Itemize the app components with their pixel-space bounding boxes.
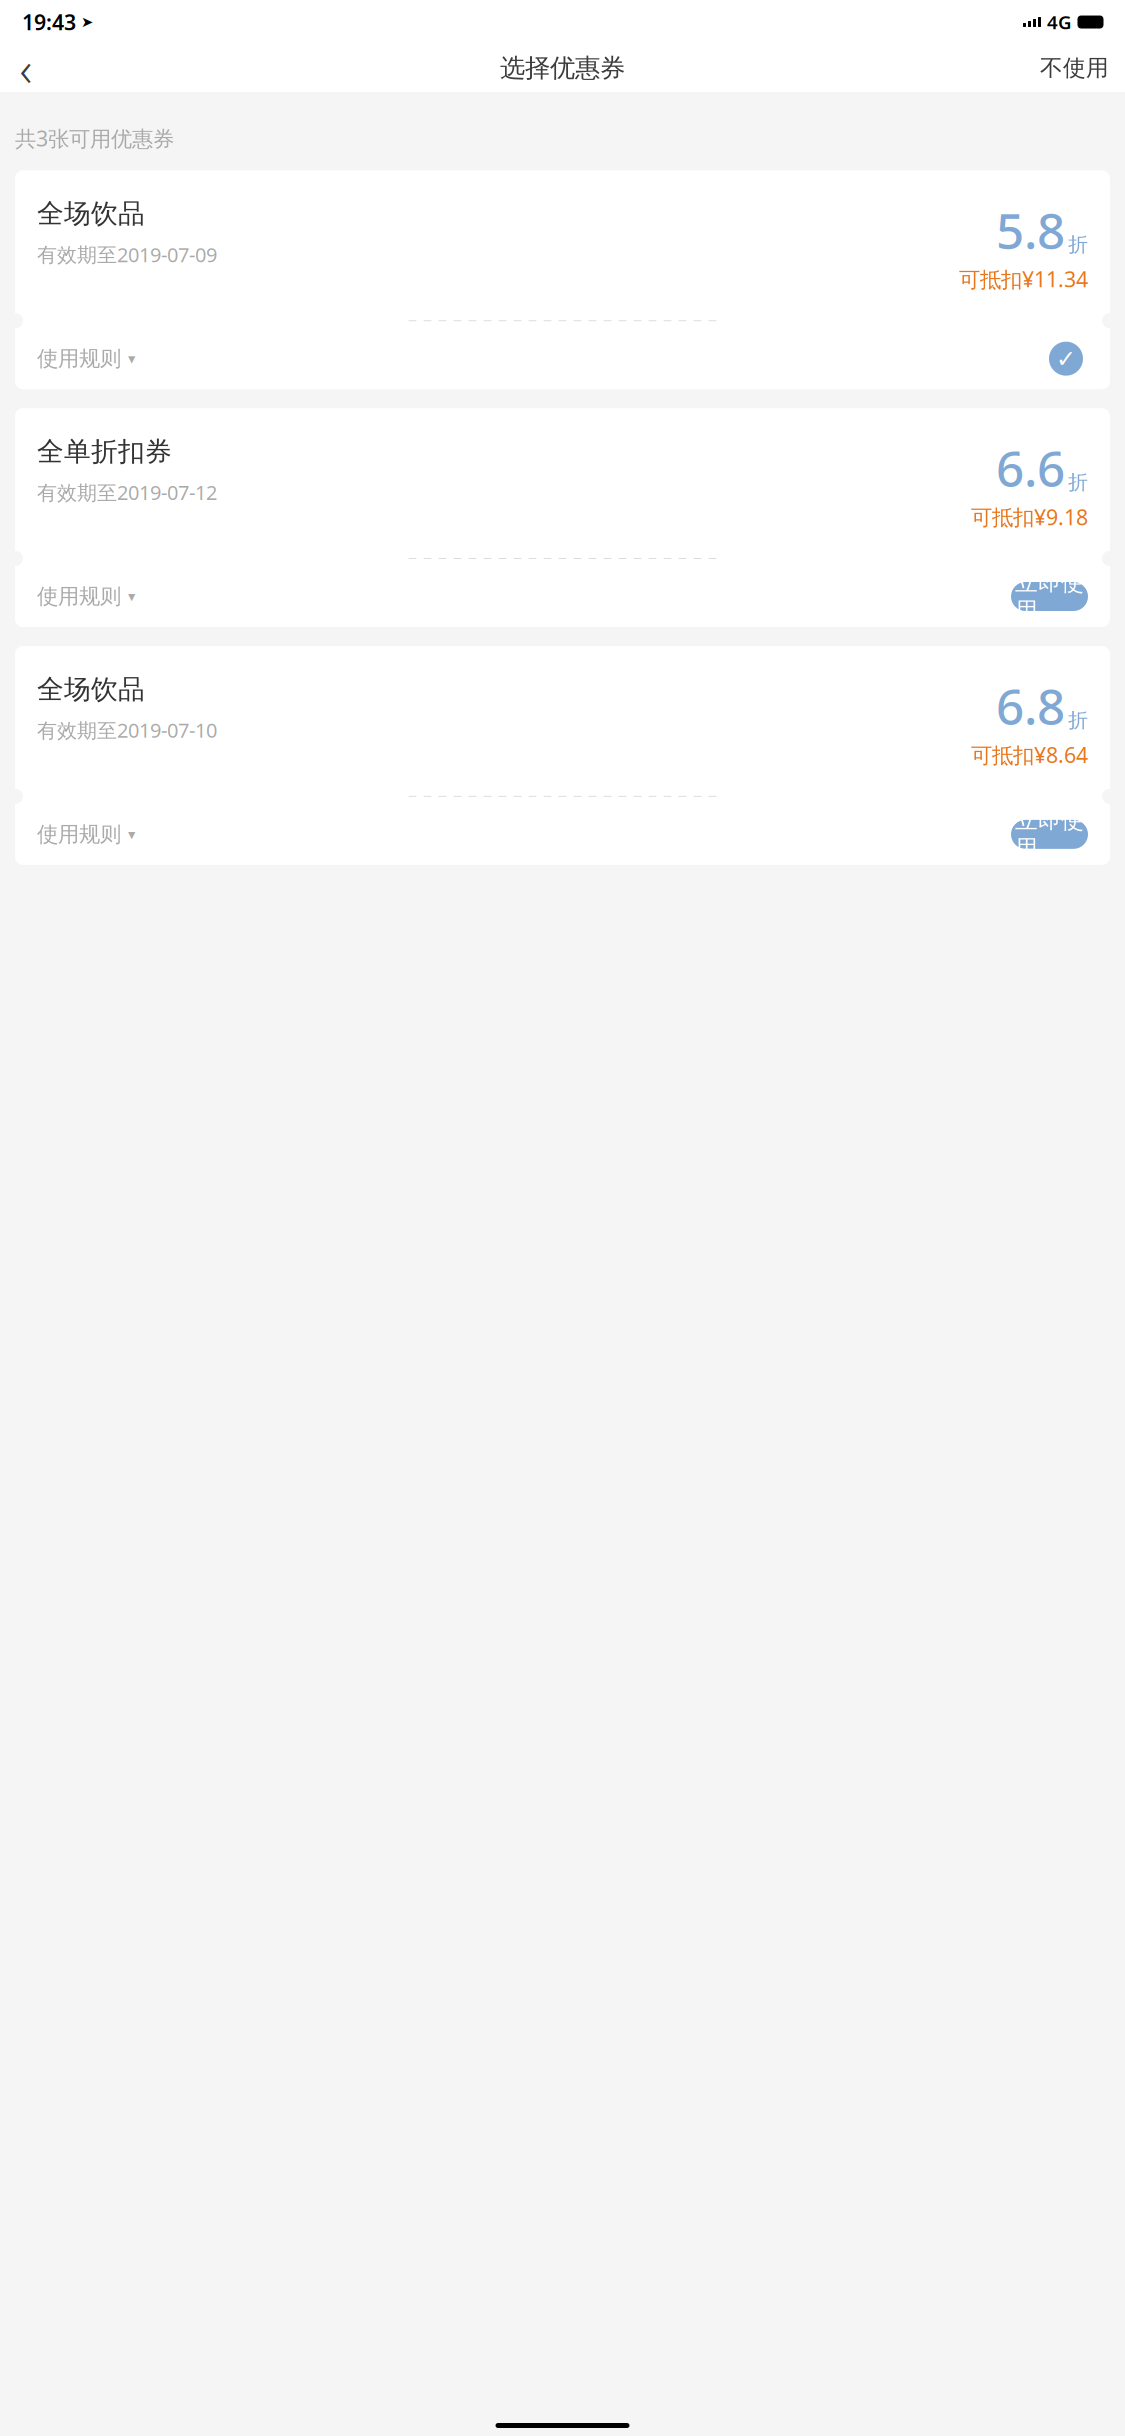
button[interactable]: 使用规则 <box>37 811 145 857</box>
staticText: 不使用 <box>1040 54 1109 82</box>
button[interactable]: Coupon selected <box>1044 337 1088 381</box>
button[interactable]: 立即使用 <box>1011 820 1088 849</box>
staticText: 6.6 <box>996 435 1065 501</box>
staticText: 折 <box>1068 708 1088 733</box>
staticText: 使用规则 <box>37 583 121 610</box>
button[interactable]: 使用规则 <box>37 336 145 382</box>
staticText: 选择优惠券 <box>500 52 625 83</box>
staticText: 立即使用 <box>1015 569 1084 624</box>
staticText: ➤ <box>81 14 93 30</box>
staticText: 4G <box>1047 10 1072 34</box>
staticText: 全场饮品 <box>37 673 145 706</box>
staticText: 有效期至2019-07-12 <box>37 479 217 505</box>
button[interactable]: Back <box>0 44 52 92</box>
staticText: 可抵扣¥8.64 <box>971 740 1088 769</box>
staticText: ▾ <box>128 350 135 367</box>
staticText: 使用规则 <box>37 346 121 372</box>
button[interactable]: 不使用 <box>1024 44 1125 92</box>
staticText: 19:43 <box>22 8 76 36</box>
staticText: 有效期至2019-07-09 <box>37 241 217 268</box>
staticText: 可抵扣¥11.34 <box>959 265 1088 293</box>
staticText: ▾ <box>128 588 135 605</box>
staticText: 立即使用 <box>1015 806 1084 862</box>
staticText: 全单折扣券 <box>37 435 172 468</box>
staticText: 折 <box>1068 470 1088 495</box>
staticText: 5.8 <box>996 197 1065 263</box>
staticText: ✓ <box>1056 345 1076 372</box>
button[interactable]: 使用规则 <box>37 573 145 620</box>
staticText: 全场饮品 <box>37 197 145 230</box>
staticText: ‹ <box>19 36 32 100</box>
staticText: 可抵扣¥9.18 <box>971 503 1088 531</box>
staticText: 共3张可用优惠券 <box>15 124 174 152</box>
staticText: 折 <box>1068 232 1088 257</box>
staticText: 有效期至2019-07-10 <box>37 717 217 743</box>
staticText: ▾ <box>128 826 135 843</box>
staticText: 6.8 <box>996 673 1065 738</box>
button[interactable]: 立即使用 <box>1011 582 1088 611</box>
staticText: 使用规则 <box>37 821 121 847</box>
